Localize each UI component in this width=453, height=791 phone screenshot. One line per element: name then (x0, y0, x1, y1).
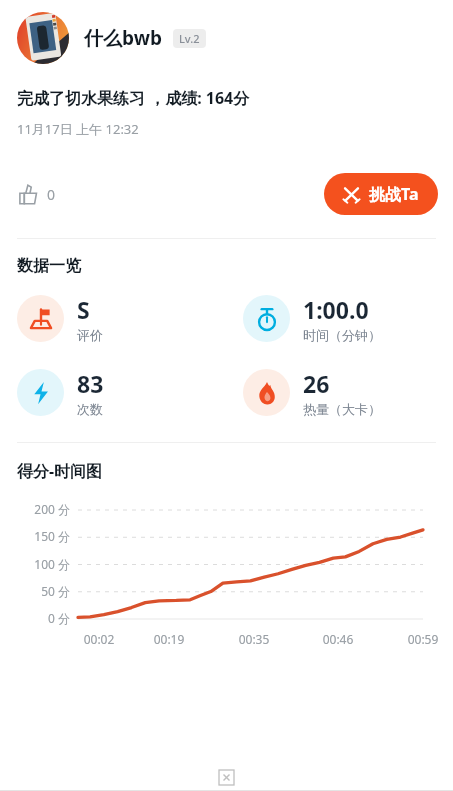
button[interactable]: Like (14, 178, 60, 211)
staticText: Lv.2 (179, 31, 200, 46)
other: Like (18, 184, 39, 205)
staticText: 挑战Ta (369, 183, 419, 205)
staticText: 00:35 (226, 631, 282, 647)
staticText: 时间（分钟） (303, 327, 381, 343)
staticText: 0 (47, 185, 56, 204)
staticText: 200 分 (0, 501, 70, 517)
staticText: 11月17日 上午 12:32 (17, 120, 139, 138)
staticText: 次数 (77, 401, 103, 417)
staticText: 00:59 (395, 631, 451, 647)
staticText: 评价 (77, 327, 103, 343)
staticText: 100 分 (0, 556, 70, 572)
staticText: 00:02 (71, 631, 127, 647)
staticText: 0 分 (0, 610, 70, 626)
staticText: 1:00.0 (303, 294, 369, 325)
staticText: 150 分 (0, 528, 70, 544)
staticText: 完成了切水果练习 ，成绩: 164分 (17, 87, 250, 109)
staticText: 26 (303, 368, 330, 399)
button[interactable]: 83 (17, 368, 226, 417)
staticText: 数据一览 (17, 256, 81, 276)
button[interactable]: 1:00.0 (243, 294, 453, 343)
button[interactable]: 26 (243, 368, 453, 417)
staticText: 得分-时间图 (17, 460, 103, 482)
button[interactable]: 挑战Ta (324, 173, 438, 215)
staticText: 50 分 (0, 583, 70, 599)
button[interactable]: 什么bwb (17, 12, 436, 64)
staticText: 83 (77, 368, 104, 399)
button[interactable]: S (17, 294, 226, 343)
staticText: 00:46 (310, 631, 366, 647)
staticText: 什么bwb (84, 25, 162, 51)
staticText: S (77, 294, 90, 325)
staticText: 00:19 (141, 631, 197, 647)
staticText: 热量（大卡） (303, 401, 381, 417)
